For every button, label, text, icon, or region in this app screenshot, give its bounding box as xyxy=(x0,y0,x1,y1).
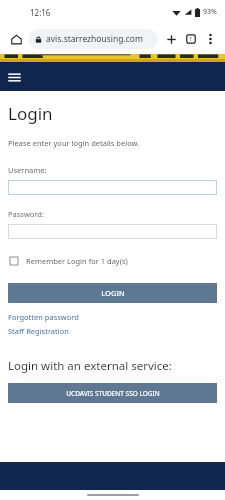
staticText: Login xyxy=(8,102,53,125)
staticText: Username: xyxy=(8,165,47,175)
button[interactable]: Tabs, 1 open xyxy=(181,29,201,49)
button[interactable]: Forgotten password xyxy=(8,312,79,322)
button[interactable]: UCDAVIS STUDENT SSO LOGIN xyxy=(8,383,217,403)
staticText: avis.starrezhousing.com xyxy=(46,33,143,45)
staticText: Forgotten password xyxy=(8,312,79,322)
button[interactable]: LOGIN xyxy=(8,283,217,303)
staticText: 93% xyxy=(203,7,217,17)
staticText: Password: xyxy=(8,209,44,219)
button[interactable]: Staff Registration xyxy=(8,326,69,336)
staticText: Login with an external service: xyxy=(8,358,172,374)
staticText: LOGIN xyxy=(101,288,125,298)
button[interactable]: Remember Login for 1 day(s) xyxy=(8,256,217,266)
staticText: 12:16 xyxy=(30,7,51,18)
staticText: Staff Registration xyxy=(8,326,69,336)
staticText: 1 xyxy=(189,35,193,43)
button[interactable]: Home xyxy=(6,29,26,49)
button[interactable]: avis.starrezhousing.com xyxy=(28,29,158,49)
button[interactable]: More options xyxy=(201,30,219,48)
button[interactable]: Menu xyxy=(6,69,22,85)
button[interactable] xyxy=(8,224,217,239)
staticText: Please enter your login details below. xyxy=(8,138,140,148)
button[interactable]: New tab xyxy=(161,29,181,49)
staticText: UCDAVIS STUDENT SSO LOGIN xyxy=(66,389,160,398)
button[interactable] xyxy=(8,180,217,195)
staticText: Remember Login for 1 day(s) xyxy=(26,256,128,266)
